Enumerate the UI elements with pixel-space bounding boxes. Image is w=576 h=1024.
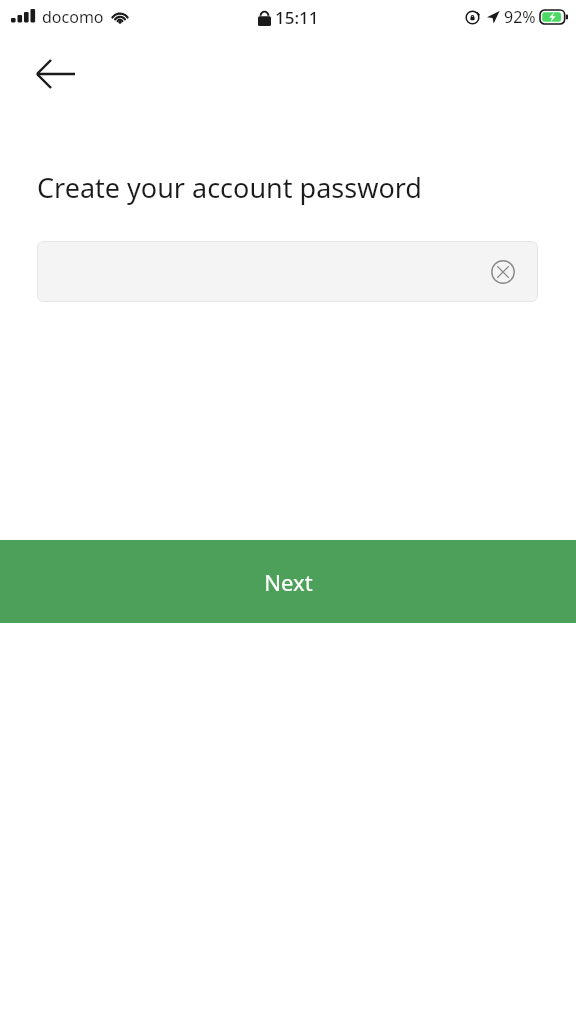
button[interactable]: Back: [20, 48, 92, 100]
staticText: Next: [264, 567, 313, 597]
button[interactable]: Clear text: [486, 255, 520, 289]
staticText: 15:11: [275, 6, 319, 29]
button[interactable]: Clear text: [37, 241, 538, 302]
staticText: Create your account password: [37, 169, 422, 206]
staticText: docomo: [42, 6, 104, 28]
button[interactable]: Next: [0, 540, 576, 623]
staticText: 92%: [504, 6, 536, 28]
